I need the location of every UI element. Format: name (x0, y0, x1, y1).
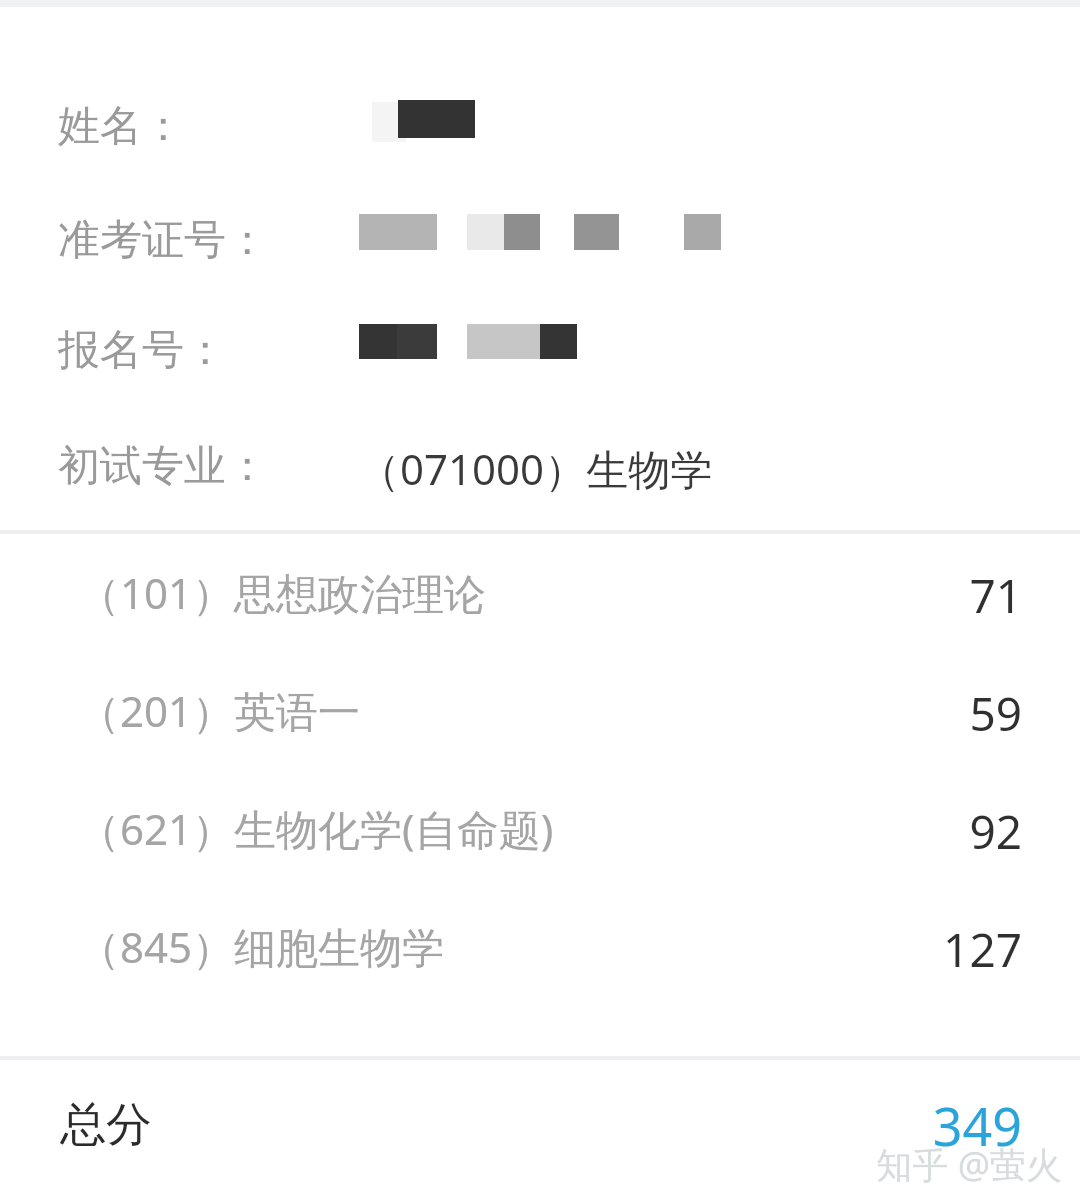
button[interactable]: 准考证号： (0, 192, 1080, 292)
staticText: （071000）生物学 (358, 440, 713, 497)
button[interactable]: （621）生物化学(自命题) (0, 788, 1080, 906)
staticText: 59 (969, 682, 1022, 745)
button[interactable]: （201）英语一 (0, 670, 1080, 788)
staticText: （101）思想政治理论 (78, 564, 487, 621)
staticText: 总分 (60, 1096, 152, 1154)
staticText: 71 (969, 564, 1022, 627)
button[interactable]: 总分 (0, 1060, 1080, 1204)
staticText: （621）生物化学(自命题) (78, 800, 554, 857)
staticText: （201）英语一 (78, 682, 361, 739)
staticText: 127 (943, 918, 1022, 981)
button[interactable]: 初试专业： (0, 412, 1080, 518)
staticText: 姓名： (58, 100, 184, 153)
staticText: （845）细胞生物学 (78, 918, 445, 975)
button[interactable]: 姓名： (0, 74, 1080, 174)
staticText: 准考证号： (58, 214, 268, 267)
staticText: 92 (969, 800, 1022, 863)
staticText: 349 (932, 1090, 1022, 1161)
button[interactable]: （845）细胞生物学 (0, 906, 1080, 1024)
staticText: 初试专业： (58, 440, 268, 493)
button[interactable]: （101）思想政治理论 (0, 552, 1080, 670)
staticText: 报名号： (58, 324, 226, 377)
staticText: 知乎 @萤火 (876, 1140, 1062, 1189)
button[interactable]: 报名号： (0, 302, 1080, 402)
